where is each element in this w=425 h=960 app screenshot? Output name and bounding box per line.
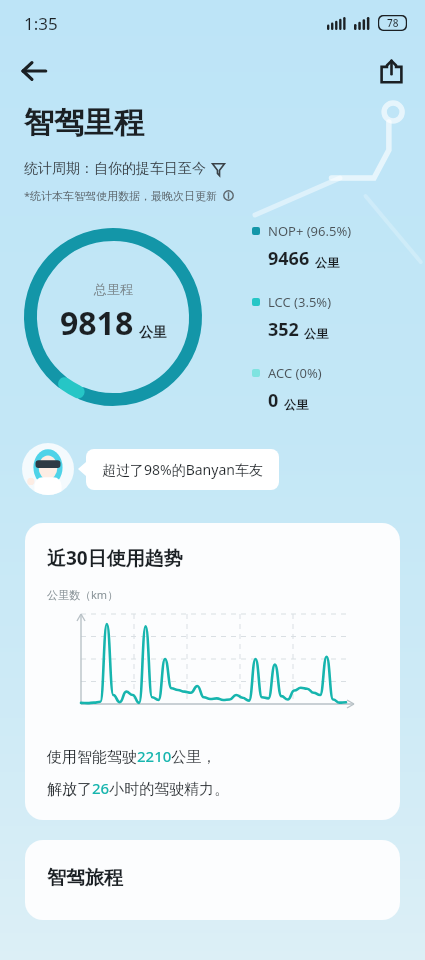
staticText: 智驾里程 bbox=[24, 104, 144, 142]
staticText: 1:35 bbox=[24, 12, 58, 35]
staticText: 解放了26小时的驾驶精力。 bbox=[47, 778, 230, 798]
staticText: 公里数（km） bbox=[47, 587, 119, 602]
staticText: 352 bbox=[268, 317, 299, 342]
staticText: 公里 bbox=[139, 324, 167, 342]
button[interactable]: 近30日使用趋势 bbox=[25, 523, 400, 820]
staticText: 公里 bbox=[315, 255, 339, 270]
staticText: 统计周期：自你的提车日至今 bbox=[24, 160, 206, 178]
button[interactable]: LCC (3.5%) bbox=[252, 293, 332, 342]
button[interactable]: Share bbox=[369, 49, 413, 93]
staticText: 9818 bbox=[60, 301, 134, 345]
button[interactable]: 智驾旅程 bbox=[25, 840, 400, 920]
button[interactable]: 超过了98%的Banyan车友 bbox=[86, 449, 279, 490]
staticText: 总里程 bbox=[94, 281, 133, 297]
staticText: 近30日使用趋势 bbox=[47, 545, 183, 571]
button[interactable]: 统计周期：自你的提车日至今 bbox=[24, 160, 225, 178]
staticText: 超过了98%的Banyan车友 bbox=[102, 460, 263, 479]
staticText: ACC (0%) bbox=[268, 364, 322, 382]
staticText: 0 bbox=[268, 388, 279, 413]
button[interactable]: ACC (0%) bbox=[252, 364, 322, 413]
staticText: *统计本车智驾使用数据，最晚次日更新 bbox=[24, 188, 218, 203]
staticText: 公里 bbox=[304, 326, 328, 341]
staticText: NOP+ (96.5%) bbox=[268, 222, 352, 240]
staticText: 公里 bbox=[284, 397, 308, 412]
button[interactable]: NOP+ (96.5%) bbox=[252, 222, 352, 271]
staticText: 智驾旅程 bbox=[47, 866, 123, 890]
staticText: LCC (3.5%) bbox=[268, 293, 332, 311]
staticText: 9466 bbox=[268, 246, 310, 271]
button[interactable]: Back bbox=[12, 49, 56, 93]
staticText: 使用智能驾驶2210公里， bbox=[47, 746, 217, 766]
staticText: 78 bbox=[387, 16, 399, 30]
button[interactable] bbox=[223, 190, 234, 201]
